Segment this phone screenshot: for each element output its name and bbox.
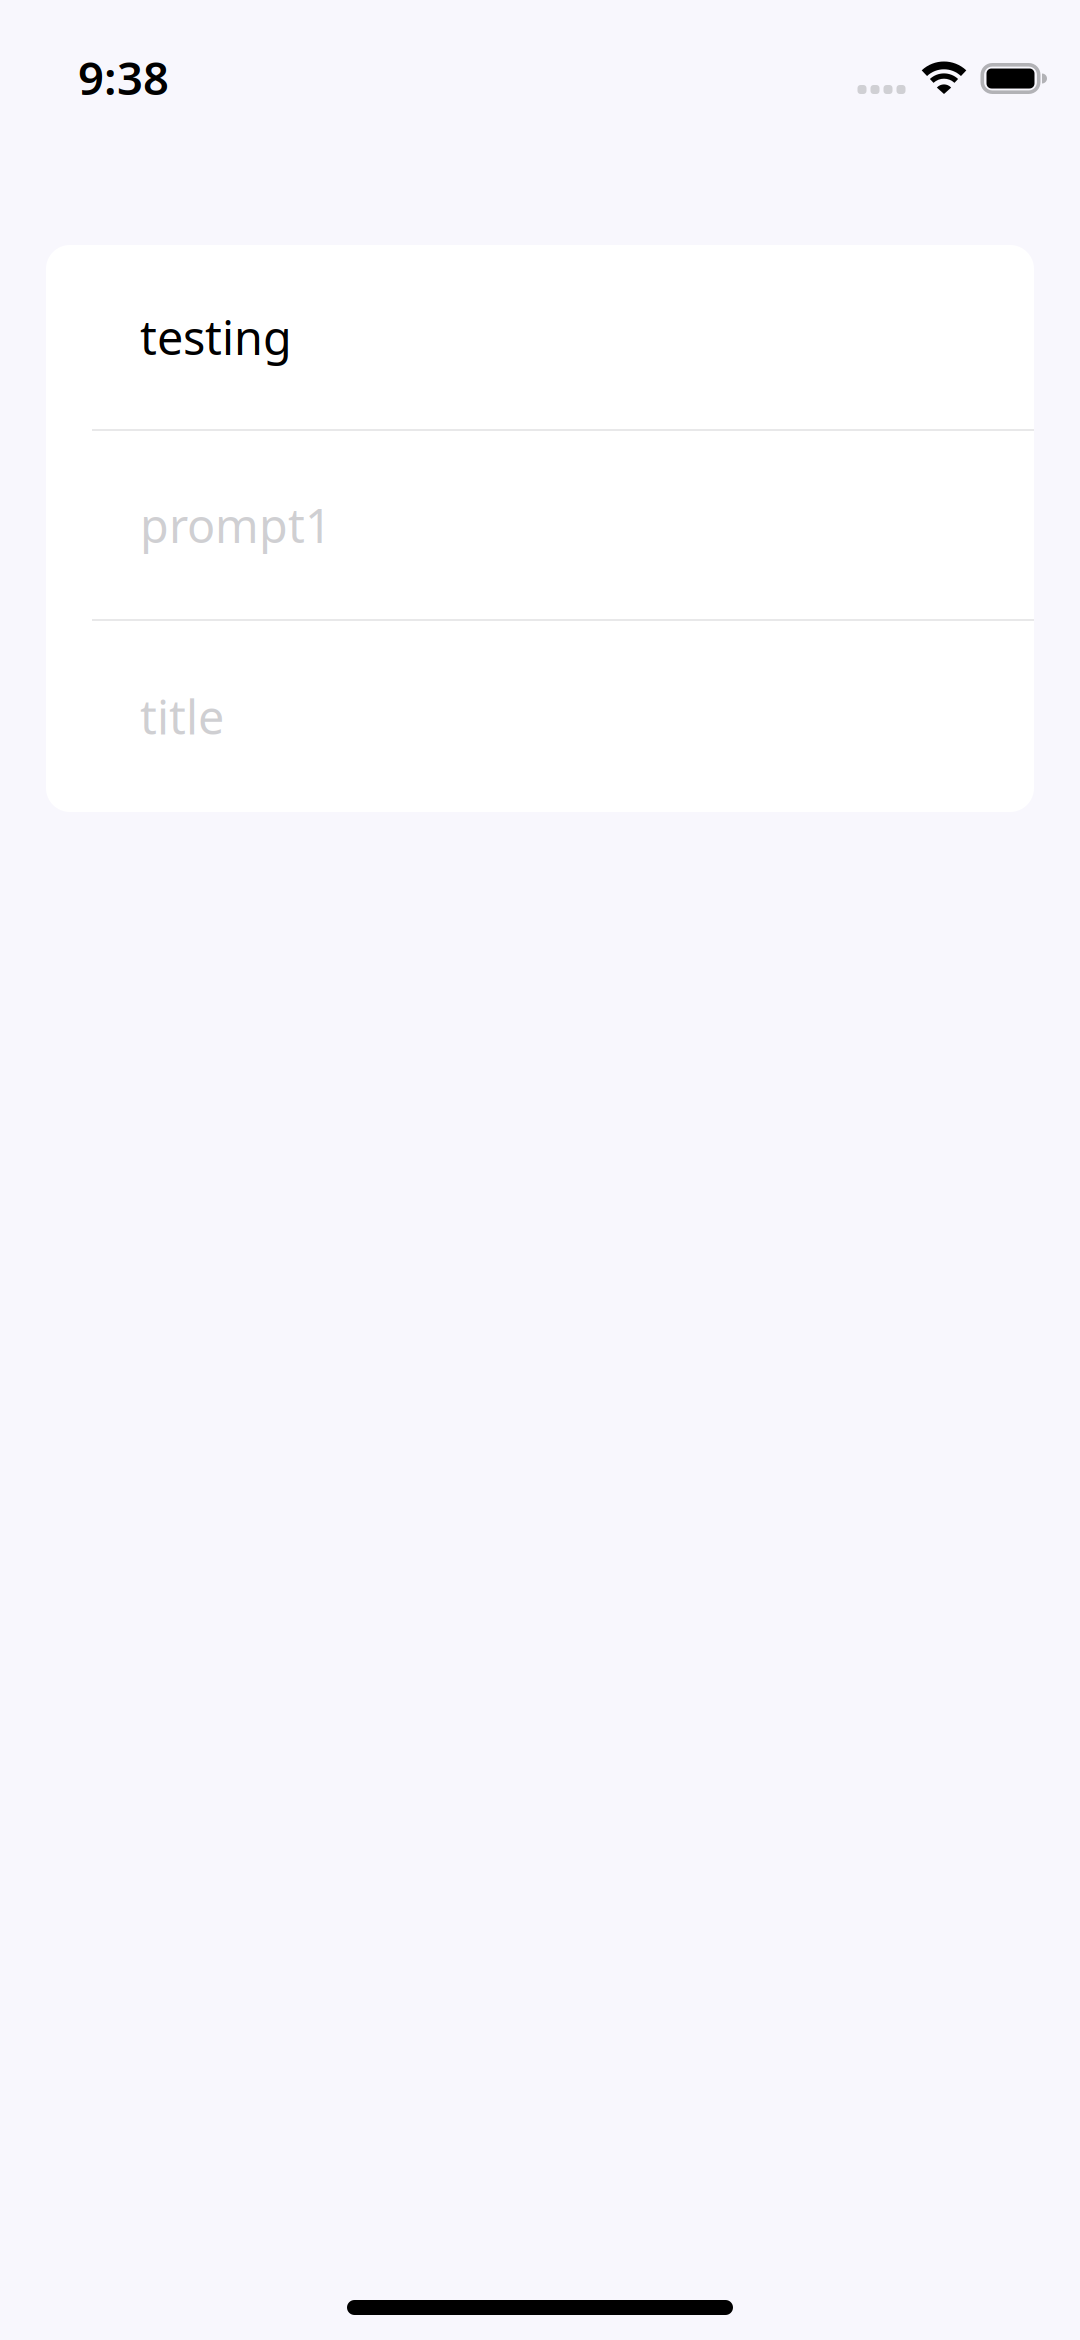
staticText: title: [140, 685, 224, 747]
button[interactable]: prompt1: [46, 431, 1034, 619]
staticText: 9:38: [78, 47, 169, 108]
staticText: testing: [140, 306, 292, 368]
staticText: prompt1: [140, 494, 332, 556]
button[interactable]: testing: [46, 245, 1034, 429]
button[interactable]: title: [46, 621, 1034, 812]
